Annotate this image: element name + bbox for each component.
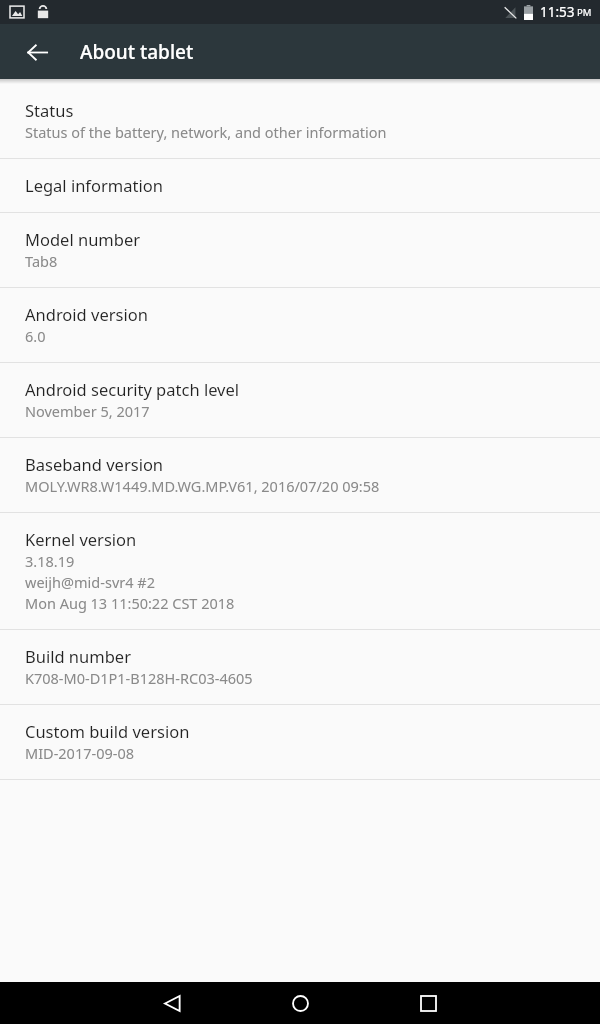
- staticText: weijh@mid-svr4 #2: [25, 572, 155, 592]
- staticText: Mon Aug 13 11:50:22 CST 2018: [25, 593, 235, 613]
- staticText: 11:53: [540, 3, 575, 21]
- staticText: K708-M0-D1P1-B128H-RC03-4605: [25, 668, 253, 688]
- button[interactable]: Android security patch level: [0, 363, 600, 437]
- staticText: Status: [25, 99, 74, 121]
- button[interactable]: Back: [146, 982, 198, 1024]
- staticText: November 5, 2017: [25, 401, 150, 421]
- button[interactable]: Kernel version: [0, 513, 600, 629]
- button[interactable]: Recent apps: [402, 982, 454, 1024]
- staticText: Status of the battery, network, and othe…: [25, 122, 387, 142]
- staticText: Build number: [25, 645, 131, 667]
- button[interactable]: Status: [0, 84, 600, 158]
- staticText: MOLY.WR8.W1449.MD.WG.MP.V61, 2016/07/20 …: [25, 476, 380, 496]
- button[interactable]: Legal information: [0, 159, 600, 212]
- button[interactable]: Android version: [0, 288, 600, 362]
- staticText: Custom build version: [25, 720, 190, 742]
- button[interactable]: Baseband version: [0, 438, 600, 512]
- staticText: Model number: [25, 228, 141, 250]
- staticText: Tab8: [25, 251, 58, 271]
- staticText: About tablet: [80, 39, 194, 65]
- button[interactable]: Model number: [0, 213, 600, 287]
- button[interactable]: Build number: [0, 630, 600, 704]
- staticText: Android version: [25, 303, 148, 325]
- staticText: Android security patch level: [25, 378, 240, 400]
- staticText: MID-2017-09-08: [25, 743, 135, 763]
- button[interactable]: Custom build version: [0, 705, 600, 779]
- staticText: PM: [577, 6, 592, 19]
- button[interactable]: Back: [13, 28, 61, 76]
- staticText: Kernel version: [25, 528, 137, 550]
- button[interactable]: Home: [274, 982, 326, 1024]
- staticText: 6.0: [25, 326, 46, 346]
- staticText: Legal information: [25, 174, 163, 196]
- staticText: 3.18.19: [25, 551, 75, 571]
- staticText: Baseband version: [25, 453, 164, 475]
